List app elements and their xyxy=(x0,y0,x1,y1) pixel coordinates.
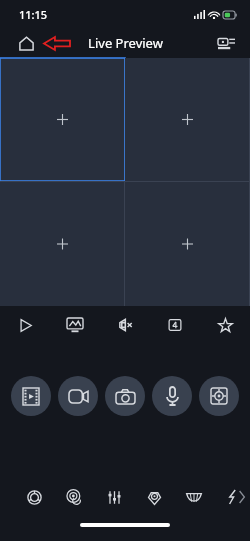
button[interactable]: Home xyxy=(12,29,40,57)
button[interactable]: Lens xyxy=(54,475,94,519)
button[interactable]: Camera feed xyxy=(212,29,240,57)
button[interactable]: Add source xyxy=(0,58,125,181)
button[interactable]: Video xyxy=(58,376,98,416)
button[interactable]: Add source xyxy=(125,58,250,181)
button[interactable]: Play xyxy=(0,306,50,344)
staticText: 11:15 xyxy=(19,7,48,22)
button[interactable]: Mute xyxy=(100,306,150,344)
button[interactable]: Color xyxy=(14,475,54,519)
button[interactable]: Layout 4 xyxy=(150,306,200,344)
button[interactable]: Clips xyxy=(11,376,51,416)
staticText: Live Preview xyxy=(88,34,163,52)
button[interactable]: Photo xyxy=(105,376,145,416)
button[interactable]: Image xyxy=(50,306,100,344)
button[interactable]: Add source xyxy=(125,182,250,306)
button[interactable]: Adjust xyxy=(94,475,134,519)
button[interactable]: Flash xyxy=(214,475,250,519)
button[interactable]: Tracking xyxy=(199,376,239,416)
button[interactable]: Microphone xyxy=(152,376,192,416)
button[interactable]: Focus xyxy=(134,475,174,519)
button[interactable]: Favorite xyxy=(200,306,250,344)
button[interactable]: Add source xyxy=(0,182,125,306)
button[interactable]: Shade xyxy=(174,475,214,519)
